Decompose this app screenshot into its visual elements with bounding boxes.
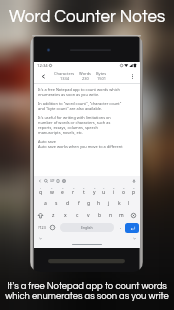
staticText: a	[44, 200, 47, 207]
button[interactable]: Search	[43, 178, 49, 184]
staticText: l	[128, 200, 130, 207]
staticText: o	[122, 189, 126, 196]
staticText: f	[78, 200, 80, 207]
staticText: Characters	[54, 71, 75, 76]
button[interactable]: 7	[99, 185, 109, 197]
button[interactable]: Backspace	[127, 209, 140, 221]
button[interactable]: 3	[57, 185, 68, 197]
staticText: GIF	[50, 179, 55, 183]
staticText: 12:34	[37, 63, 48, 69]
button[interactable]: GIF	[49, 178, 55, 184]
staticText: 1334	[60, 76, 70, 81]
button[interactable]: English	[60, 223, 114, 232]
button[interactable]: c	[71, 209, 83, 221]
button[interactable]: h	[94, 197, 104, 209]
staticText: It's a free Notepad app to count words w…	[5, 281, 169, 301]
staticText: 4	[73, 186, 75, 189]
staticText: d	[66, 200, 70, 207]
staticText: k	[118, 200, 121, 207]
staticText: z	[52, 212, 55, 219]
button[interactable]: g	[84, 197, 94, 209]
staticText: ?123	[38, 225, 46, 230]
staticText: It's useful for writing with limitations…	[38, 115, 111, 135]
button[interactable]: 4	[68, 185, 79, 197]
staticText: 6	[94, 186, 96, 189]
button[interactable]: More options	[128, 72, 137, 81]
staticText: 3	[62, 186, 64, 189]
button[interactable]: Hide	[131, 235, 137, 241]
staticText: 5	[83, 186, 85, 189]
button[interactable]: 0	[129, 185, 139, 197]
button[interactable]: 6	[89, 185, 99, 197]
staticText: Word Counter Notes	[9, 8, 166, 26]
button[interactable]: Enter	[125, 223, 139, 233]
button[interactable]: Expand	[37, 178, 43, 184]
staticText: g	[87, 200, 91, 207]
button[interactable]: b	[94, 209, 105, 221]
staticText: v	[87, 212, 90, 219]
button[interactable]: Back	[38, 71, 48, 81]
staticText: y	[93, 189, 96, 196]
staticText: It's a free Notepad app to count words w…	[38, 87, 120, 97]
button[interactable]: ?123	[35, 223, 48, 232]
button[interactable]: d	[62, 197, 73, 209]
button[interactable]: .	[117, 223, 125, 232]
button[interactable]: 1	[35, 185, 46, 197]
button[interactable]: x	[59, 209, 71, 221]
staticText: c	[76, 212, 79, 219]
button[interactable]: Shift	[34, 209, 47, 221]
staticText: 9	[123, 186, 125, 189]
staticText: u	[102, 189, 106, 196]
staticText: 1	[40, 186, 42, 189]
button[interactable]: z	[47, 209, 59, 221]
staticText: n	[109, 212, 113, 219]
staticText: English	[81, 225, 93, 230]
button[interactable]: j	[104, 197, 114, 209]
staticText: .	[120, 224, 122, 231]
staticText: Words	[79, 71, 92, 76]
staticText: i	[113, 189, 115, 196]
button[interactable]: v	[83, 209, 94, 221]
button[interactable]: a	[40, 197, 51, 209]
staticText: h	[97, 200, 101, 207]
staticText: Bytes	[96, 71, 107, 76]
staticText: m	[119, 212, 124, 219]
staticText: t	[83, 189, 85, 196]
button[interactable]: Voice input	[131, 178, 137, 184]
button[interactable]: 9	[119, 185, 129, 197]
staticText: b	[98, 212, 102, 219]
button[interactable]: n	[105, 209, 116, 221]
staticText: 0	[133, 186, 135, 189]
staticText: j	[108, 200, 110, 207]
staticText: Auto save Auto save works when you move …	[38, 139, 123, 149]
button[interactable]: Clipboard	[55, 178, 61, 184]
staticText: e	[61, 189, 64, 196]
staticText: 8	[113, 186, 115, 189]
staticText: 1501	[97, 76, 107, 81]
button[interactable]: Settings	[61, 178, 67, 184]
staticText: r	[72, 189, 75, 196]
staticText: q	[39, 189, 43, 196]
button[interactable]: Emoji	[48, 223, 57, 232]
button[interactable]: f	[73, 197, 84, 209]
staticText: 7	[103, 186, 105, 189]
button[interactable]: 5	[79, 185, 89, 197]
button[interactable]: Hide keyboard	[37, 235, 43, 241]
staticText: s	[55, 200, 58, 207]
staticText: x	[64, 212, 67, 219]
staticText: 2	[51, 186, 53, 189]
button[interactable]: 2	[46, 185, 57, 197]
button[interactable]: l	[124, 197, 134, 209]
button[interactable]: 8	[109, 185, 119, 197]
button[interactable]: k	[114, 197, 124, 209]
staticText: w	[50, 189, 54, 196]
staticText: p	[132, 189, 136, 196]
button[interactable]: s	[51, 197, 62, 209]
staticText: 230	[82, 76, 89, 81]
staticText: In addition to "word count", "character …	[38, 101, 122, 111]
button[interactable]: m	[116, 209, 127, 221]
